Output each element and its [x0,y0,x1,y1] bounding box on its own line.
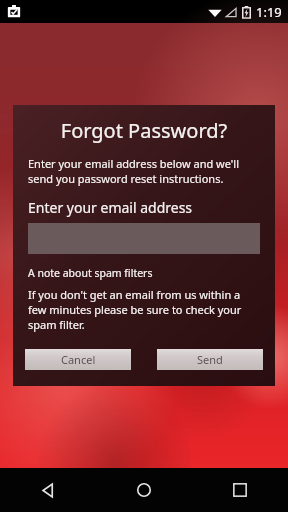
staticText: 1:19 [256,3,282,21]
staticText: Send [197,352,223,367]
staticText: Cancel [61,352,96,367]
staticText: Forgot Password? [13,117,275,144]
button[interactable]: Send [157,349,263,370]
staticText: Enter your email address [28,198,193,217]
button[interactable]: Recent apps [192,468,288,512]
button[interactable]: Cancel [25,349,131,370]
staticText: Enter your email address below and we'll… [28,156,260,186]
button[interactable]: Back [0,468,96,512]
staticText: If you don't get an email from us within… [28,287,260,332]
staticText: A note about spam filters [28,266,153,280]
button[interactable]: Home [96,468,192,512]
